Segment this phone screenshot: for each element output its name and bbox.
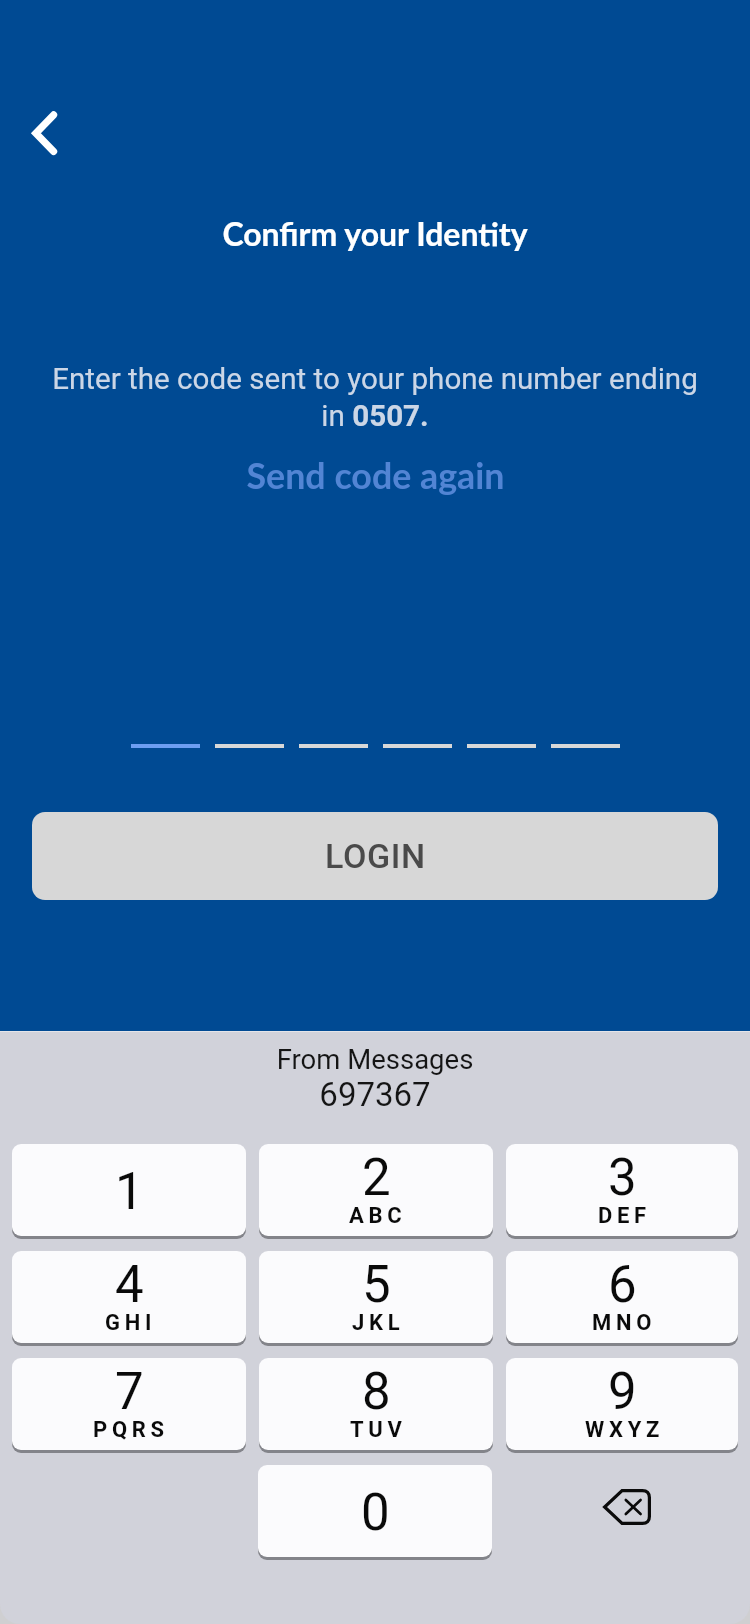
staticText: MNO [592,1310,657,1336]
staticText: 0 [361,1483,390,1543]
staticText: Enter the code sent to your phone number… [40,362,710,433]
button[interactable]: 2 [259,1144,493,1239]
staticText: DEF [598,1203,651,1229]
staticText: TUV [350,1417,407,1443]
button[interactable]: 9 [506,1358,738,1453]
button[interactable]: 1 [12,1144,246,1239]
button[interactable]: Send code again [236,450,515,501]
staticText: 9 [608,1362,637,1422]
staticText: 7 [115,1362,144,1422]
button[interactable]: LOGIN [32,812,718,900]
button[interactable]: 0 [258,1465,492,1560]
staticText: Confirm your Identity [0,214,750,252]
staticText: PQRS [93,1417,169,1443]
staticText: 8 [362,1362,391,1422]
staticText: JKL [352,1310,405,1336]
staticText: 5 [362,1255,391,1315]
staticText: WXYZ [585,1417,664,1443]
staticText: 1 [115,1162,144,1222]
staticText: From Messages [0,1043,750,1075]
staticText: 6 [608,1255,637,1315]
button[interactable]: 7 [12,1358,246,1453]
button[interactable]: 3 [506,1144,738,1239]
staticText: 3 [608,1148,637,1208]
staticText: LOGIN [325,836,426,876]
button[interactable]: Back [0,88,88,178]
button[interactable]: 5 [259,1251,493,1346]
staticText: 4 [115,1255,144,1315]
staticText: 697367 [0,1075,750,1114]
staticText: 2 [362,1148,391,1208]
button[interactable]: Backspace [505,1465,738,1560]
staticText: ABC [349,1203,407,1229]
staticText: GHI [105,1310,157,1336]
button[interactable]: 4 [12,1251,246,1346]
button[interactable]: 8 [259,1358,493,1453]
button[interactable]: 6 [506,1251,738,1346]
